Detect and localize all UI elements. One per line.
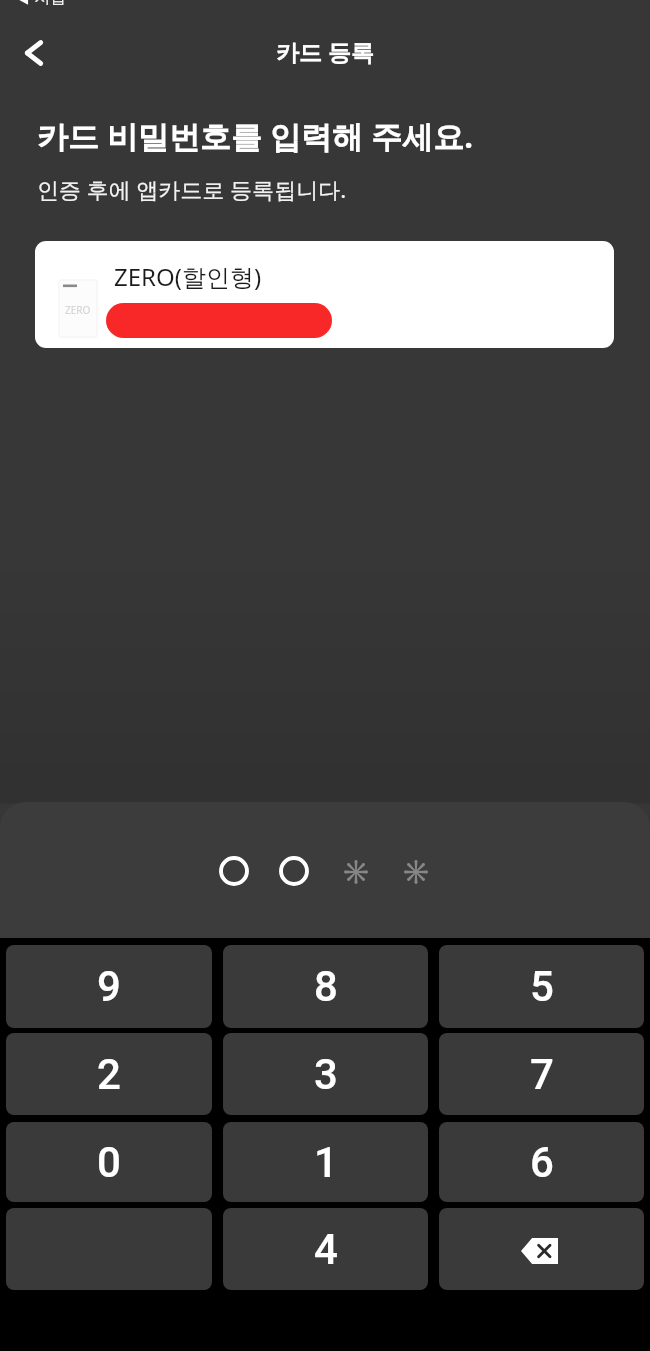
button[interactable]: 9 (6, 945, 212, 1028)
staticText: 5 (530, 962, 554, 1011)
button[interactable] (6, 1208, 212, 1290)
staticText: 8 (314, 962, 338, 1011)
staticText: 1 (314, 1138, 338, 1187)
staticText: 카드 비밀번호를 입력해 주세요. (37, 115, 473, 157)
button[interactable]: 3 (223, 1033, 428, 1115)
staticText: 카드 등록 (276, 36, 374, 67)
staticText: 9 (97, 962, 121, 1011)
button[interactable]: Back (10, 30, 58, 78)
staticText: 4 (314, 1225, 338, 1274)
button[interactable]: 7 (439, 1033, 644, 1115)
button[interactable]: 2 (6, 1033, 212, 1115)
staticText: 2 (97, 1050, 121, 1099)
staticText: 인증 후에 앱카드로 등록됩니다. (37, 174, 347, 204)
staticText: 0 (97, 1138, 121, 1187)
button[interactable]: 0 (6, 1122, 212, 1202)
button[interactable]: 6 (439, 1122, 644, 1202)
button[interactable]: 1 (223, 1122, 428, 1202)
staticText: 7 (530, 1050, 554, 1099)
button[interactable]: 4 (223, 1208, 428, 1290)
staticText: ZERO(할인형) (114, 260, 262, 293)
button[interactable]: ZERO (35, 241, 614, 348)
button[interactable]: Backspace (439, 1208, 644, 1290)
staticText: 3 (314, 1050, 338, 1099)
staticText: 6 (530, 1138, 554, 1187)
button[interactable]: 5 (439, 945, 644, 1028)
staticText: ZERO (65, 303, 91, 317)
staticText: 지갑 (34, 0, 66, 8)
button[interactable]: 8 (223, 945, 428, 1028)
